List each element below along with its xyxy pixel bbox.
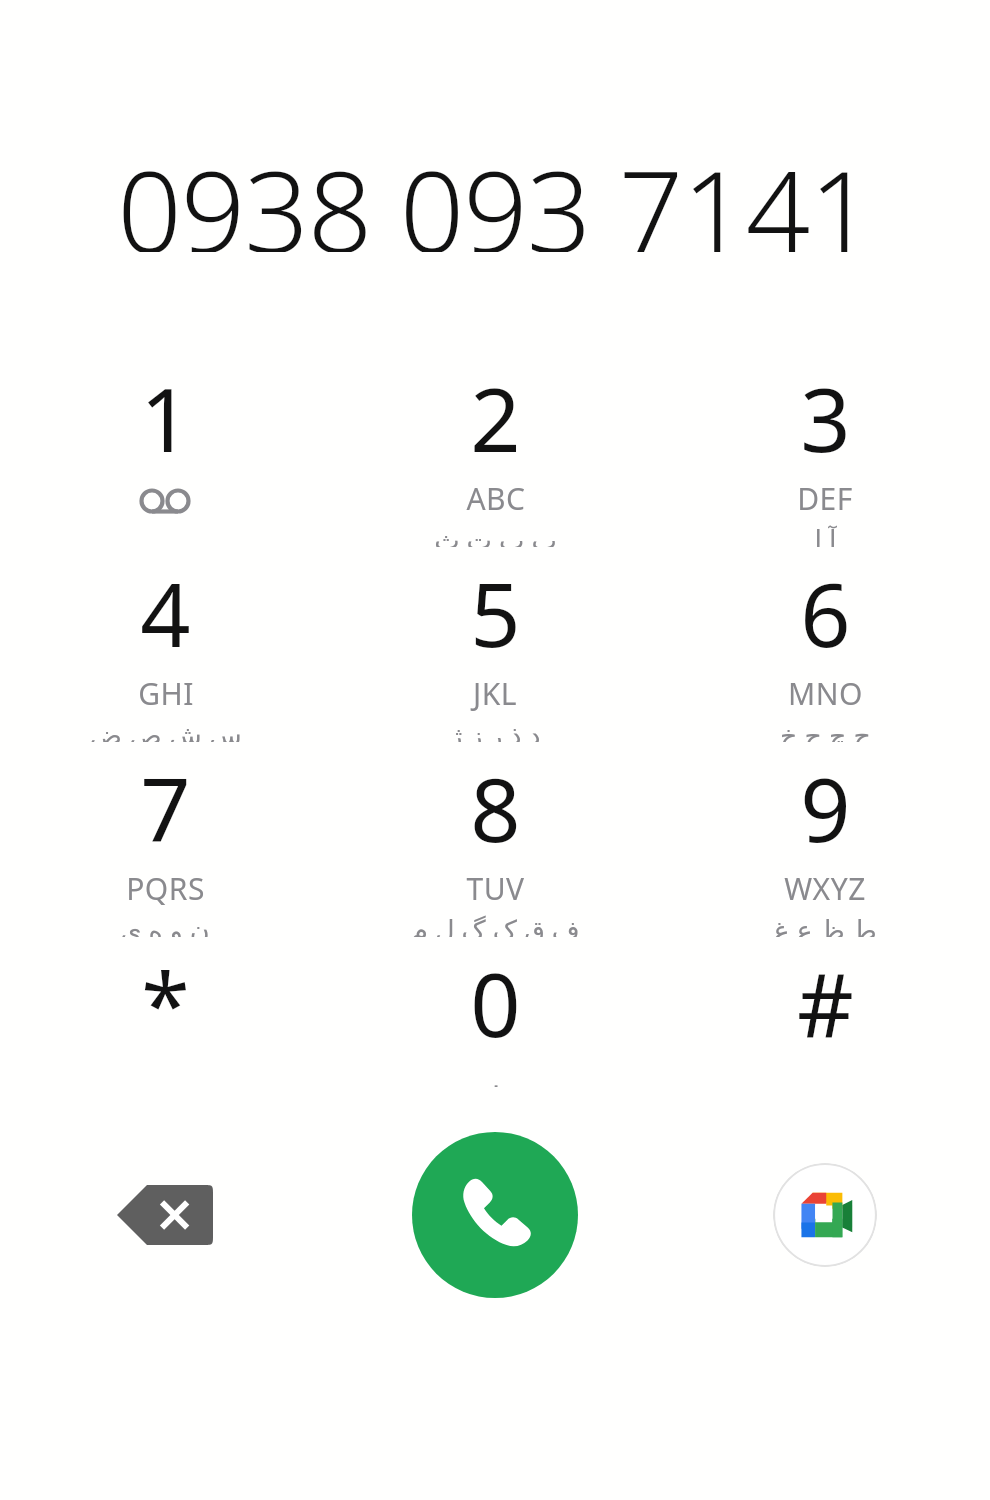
button[interactable]: 1 [0,352,330,547]
button[interactable]: Video call with Google Meet [773,1163,877,1267]
staticText: 1 [140,358,191,478]
staticText: 6 [800,553,851,673]
staticText: 2 [470,358,521,478]
staticText: 4 [140,553,191,673]
staticText: 8 [470,748,521,868]
staticText: ف ق ک گ ل م [411,911,580,937]
button[interactable]: 8 [330,742,660,937]
staticText: د ذ ر ز ژ [449,716,541,742]
staticText: * [141,943,190,1063]
staticText: PQRS [126,868,205,909]
staticText: ABC [466,478,526,519]
button[interactable]: 5 [330,547,660,742]
button[interactable]: 0938 093 7141 [0,132,990,252]
button[interactable]: 4 [0,547,330,742]
staticText: WXYZ [784,868,866,909]
button[interactable]: 3 [660,352,990,547]
staticText: + [485,1067,507,1087]
staticText: 3 [800,358,851,478]
staticText: ج چ ح خ [780,716,871,742]
staticText: ب پ ت ث [434,521,557,547]
button[interactable]: Backspace [0,1115,330,1315]
staticText: TUV [466,868,525,909]
button[interactable]: # [660,937,990,1087]
staticText: JKL [473,673,517,714]
staticText: GHI [138,673,194,714]
button[interactable]: 9 [660,742,990,937]
staticText: 9 [800,748,851,868]
staticText: 0 [470,943,521,1063]
button[interactable]: * [0,937,330,1087]
staticText: س ش ص ض [89,716,242,742]
staticText: 7 [140,748,191,868]
staticText: 5 [470,553,521,673]
staticText: DEF [797,478,853,519]
staticText: ن و ه ی [120,911,210,937]
staticText: ط ظ ع غ [773,911,877,937]
button[interactable]: Call [412,1132,578,1298]
staticText: 0938 093 7141 [117,132,873,252]
button[interactable]: 2 [330,352,660,547]
button[interactable]: 6 [660,547,990,742]
staticText: MNO [788,673,863,714]
button[interactable]: 7 [0,742,330,937]
staticText: # [797,943,854,1063]
staticText: آ ا [814,521,837,547]
button[interactable]: 0 [330,937,660,1087]
